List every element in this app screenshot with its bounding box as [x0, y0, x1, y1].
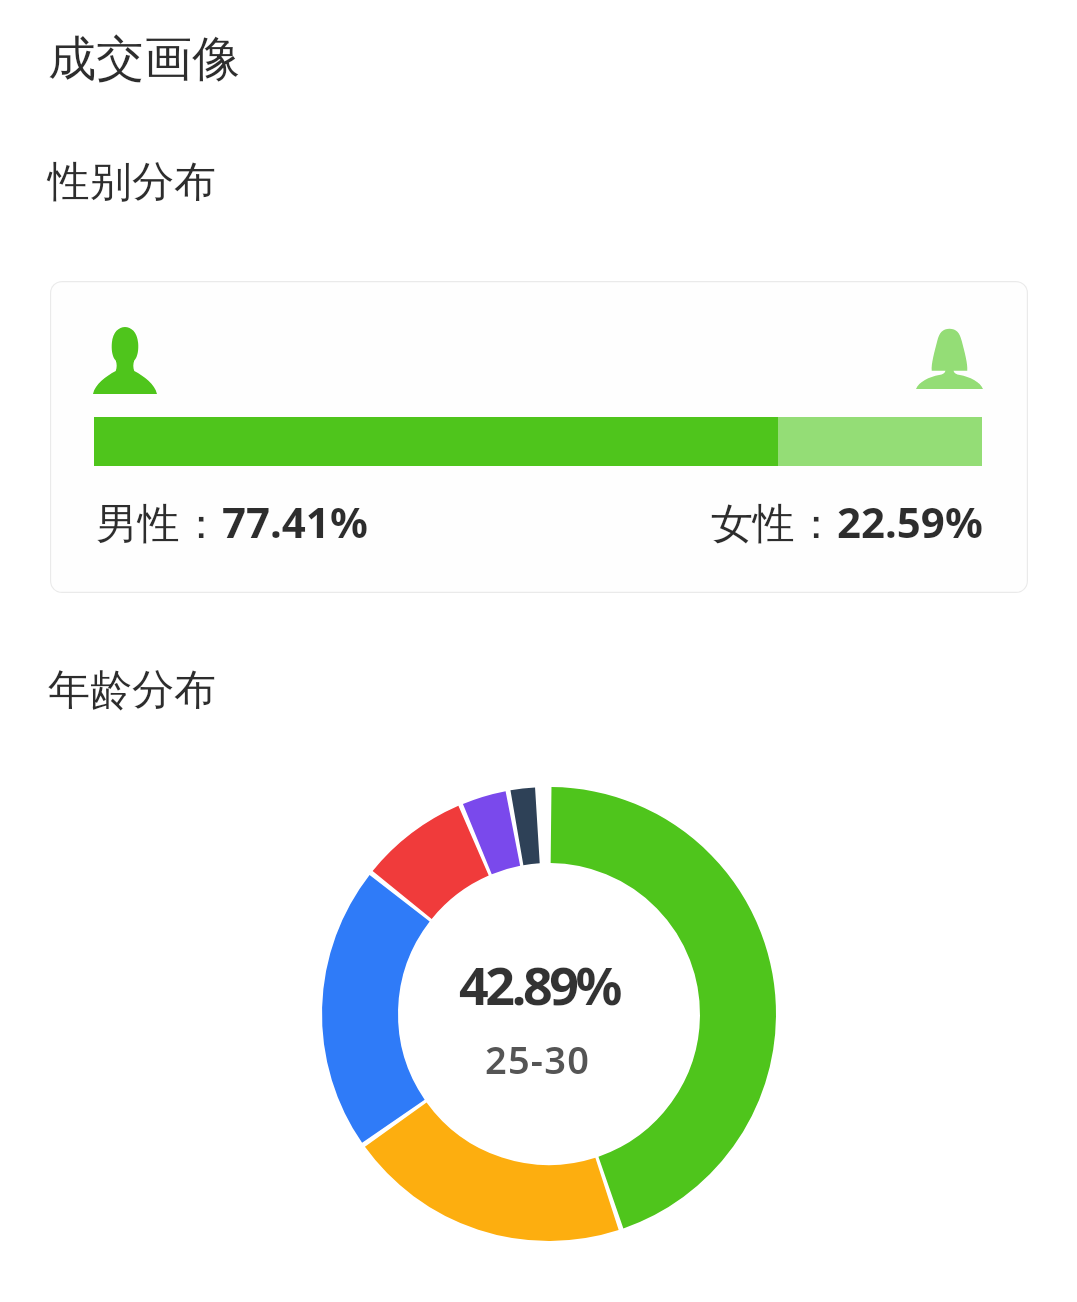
staticText: 成交画像	[48, 29, 240, 89]
button[interactable]: Female	[916, 327, 983, 389]
staticText: 25-30	[485, 1033, 591, 1085]
staticText: 男性：77.41%	[96, 493, 368, 550]
button[interactable]: Male	[50, 281, 1028, 593]
staticText: 42.89%	[459, 949, 620, 1020]
button[interactable]: Age distribution donut chart	[322, 787, 776, 1241]
staticText: 女性：22.59%	[711, 493, 983, 550]
button[interactable]: Gender split bar	[94, 417, 982, 466]
staticText: 年龄分布	[48, 664, 216, 717]
staticText: 性别分布	[48, 156, 216, 209]
button[interactable]: Male	[93, 327, 157, 394]
